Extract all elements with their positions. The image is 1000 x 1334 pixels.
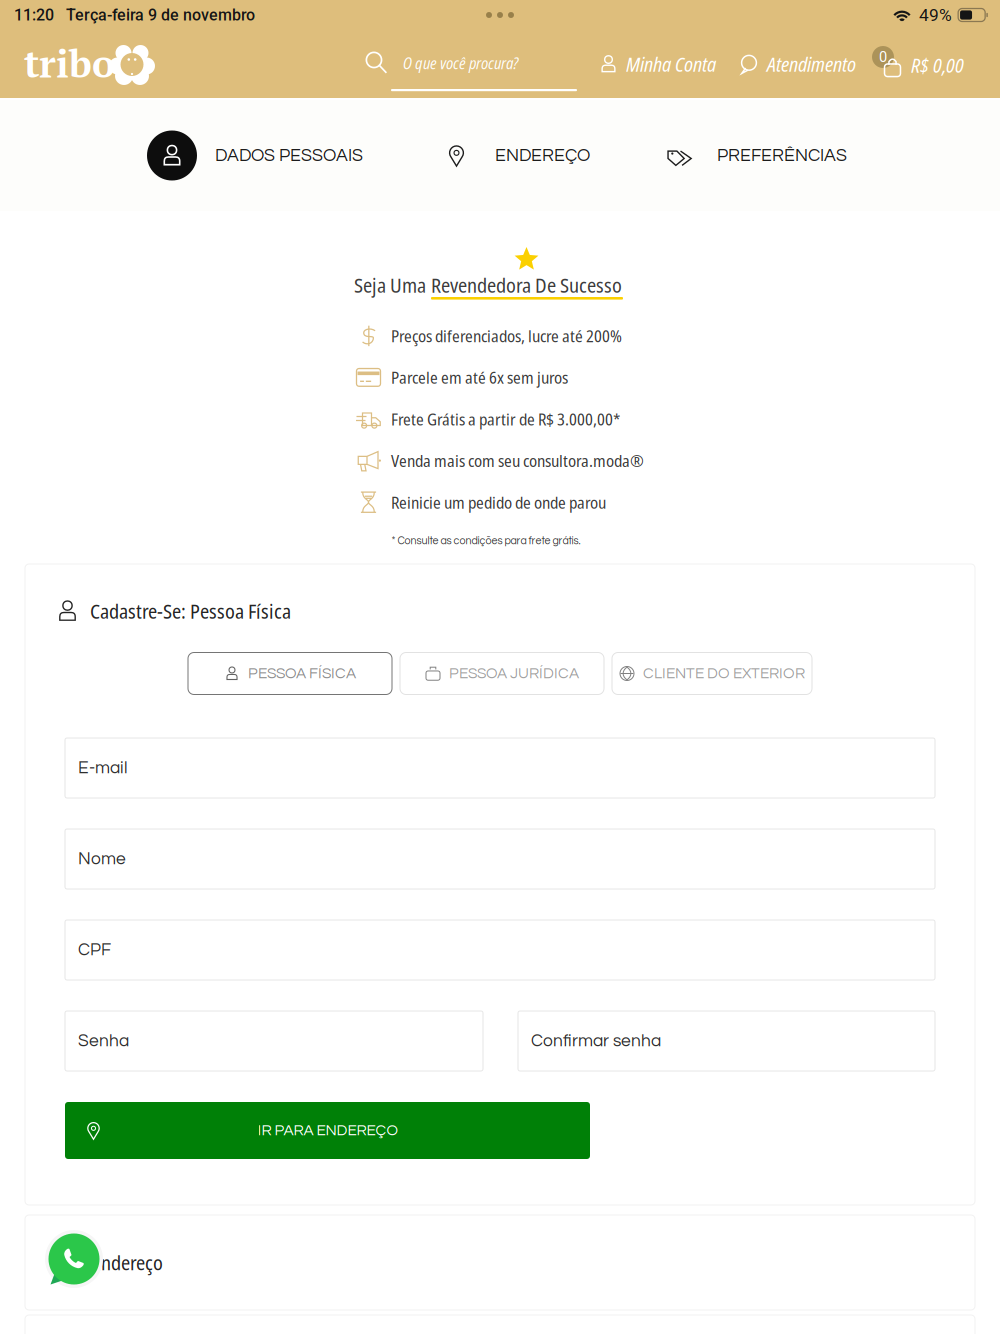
staticText: Preços diferenciados, lucre até 200% (391, 324, 622, 347)
button[interactable]: IR PARA ENDEREÇO (65, 1102, 590, 1159)
button[interactable]: PESSOA JURÍDICA (400, 652, 604, 694)
staticText: Seja Uma (354, 271, 430, 299)
staticText: Minha Conta (626, 50, 716, 78)
button[interactable]: Cadastre-Se: Pessoa Física (56, 596, 356, 626)
button[interactable]: Fale conosco no WhatsApp (45, 1230, 103, 1288)
staticText: Terça-feira 9 de novembro (54, 6, 255, 24)
button[interactable]: ENDEREÇO (445, 100, 595, 211)
staticText: E-mail (78, 759, 128, 777)
staticText: Venda mais com seu consultora.moda® (391, 449, 644, 472)
staticText: Revendedora De Sucesso (431, 271, 622, 299)
button[interactable]: Atendimento (739, 30, 859, 98)
staticText: 11:20 (14, 6, 54, 24)
staticText: R$ 0,00 (911, 51, 964, 79)
staticText: Nome (78, 850, 126, 868)
staticText: 0 (879, 48, 887, 66)
button[interactable]: Endereço (25, 1215, 975, 1310)
staticText: * Consulte as condições para frete gráti… (391, 535, 580, 546)
button[interactable]: CPF (65, 920, 935, 980)
button[interactable]: Nome (65, 829, 935, 889)
staticText: Parcele em até 6x sem juros (391, 366, 568, 389)
staticText: Endereço (92, 1249, 163, 1276)
button[interactable]: PREFERÊNCIAS (665, 100, 855, 211)
staticText: tribo (24, 37, 115, 89)
staticText: Confirmar senha (531, 1032, 661, 1050)
button[interactable]: Confirmar senha (518, 1011, 935, 1071)
staticText: Atendimento (767, 50, 856, 78)
staticText: PESSOA FÍSICA (248, 666, 356, 681)
button[interactable]: PESSOA FÍSICA (188, 652, 392, 694)
button[interactable]: Carrinho, R$ 0,00 (866, 30, 961, 98)
staticText: Frete Grátis a partir de R$ 3.000,00* (391, 408, 620, 430)
staticText: Reinicie um pedido de onde parou (391, 491, 606, 513)
staticText: CLIENTE DO EXTERIOR (643, 666, 805, 681)
staticText: IR PARA ENDEREÇO (257, 1123, 398, 1138)
button[interactable]: Minha Conta (599, 30, 717, 98)
staticText: Cadastre-Se: Pessoa Física (90, 597, 291, 625)
staticText: PESSOA JURÍDICA (449, 666, 579, 681)
button[interactable]: Buscar (365, 30, 577, 98)
button[interactable]: DADOS PESSOAIS (147, 100, 367, 211)
staticText: ENDEREÇO (495, 146, 590, 165)
staticText: CPF (78, 941, 111, 959)
button[interactable]: E-mail (65, 738, 935, 798)
staticText: DADOS PESSOAIS (215, 146, 363, 165)
staticText: Senha (78, 1032, 129, 1050)
button[interactable]: CLIENTE DO EXTERIOR (612, 652, 812, 694)
staticText: PREFERÊNCIAS (717, 146, 847, 165)
button[interactable]: tribo — página inicial (24, 30, 164, 98)
staticText: O que você procura? (403, 52, 518, 74)
staticText: 49% (919, 5, 952, 25)
button[interactable]: Senha (65, 1011, 483, 1071)
